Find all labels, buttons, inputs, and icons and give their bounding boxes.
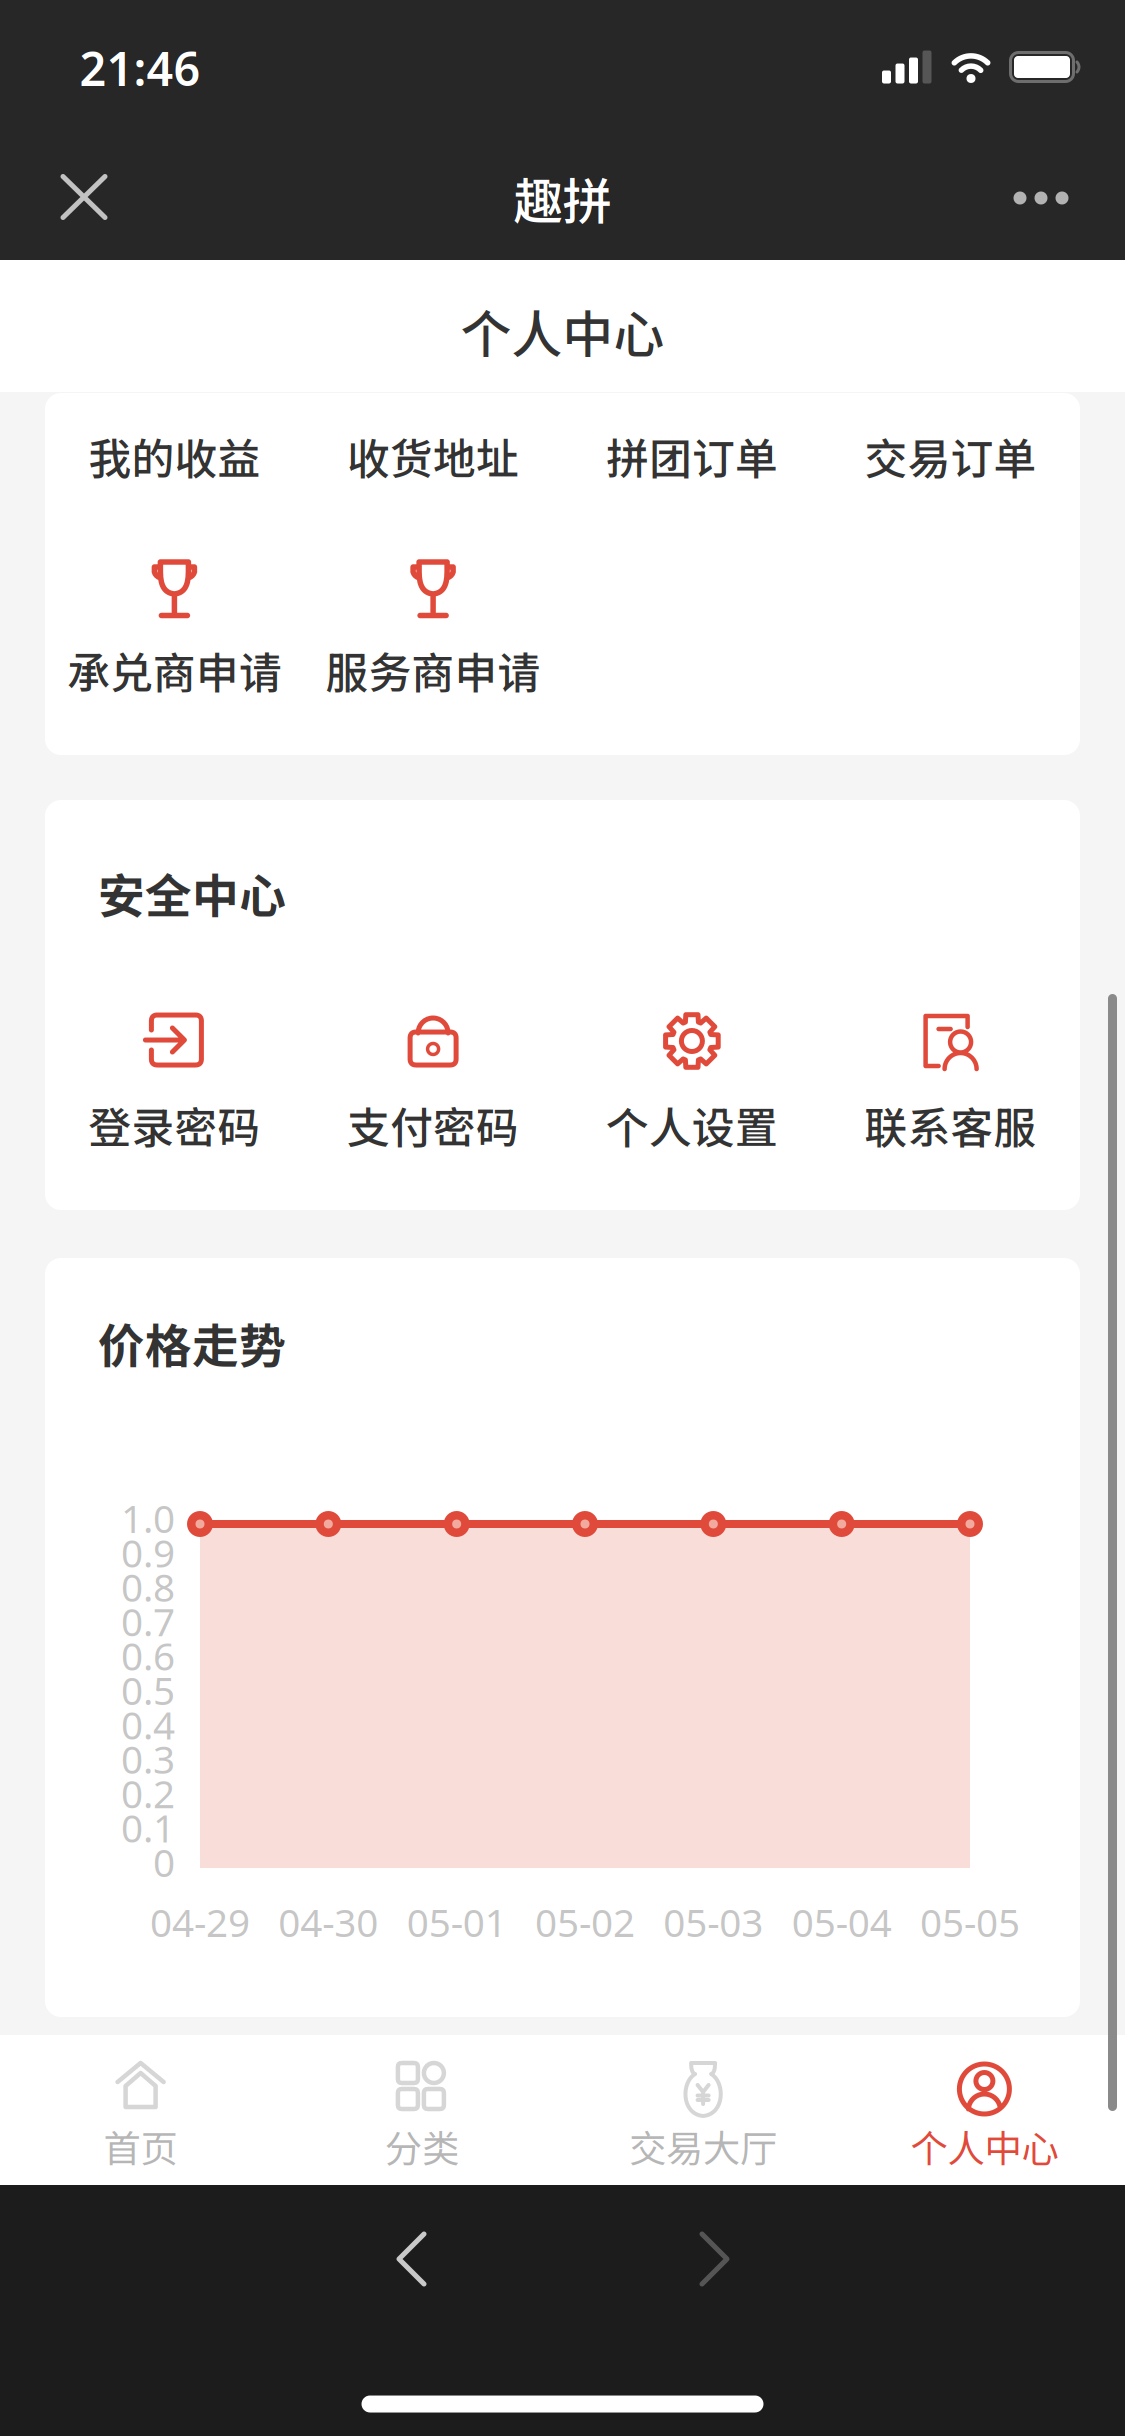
button[interactable]: Forward — [669, 2214, 759, 2304]
staticText: 交易大厅 — [629, 2119, 777, 2173]
button[interactable]: 交易大厅 — [573, 2049, 833, 2179]
button[interactable]: 首页 — [11, 2049, 271, 2179]
staticText: 0 — [153, 1836, 175, 1888]
button[interactable]: 拼团订单 — [567, 401, 817, 511]
button[interactable]: 联系客服 — [831, 993, 1071, 1173]
staticText: 首页 — [104, 2119, 178, 2173]
staticText: 服务商申请 — [326, 639, 541, 701]
staticText: 安全中心 — [98, 859, 286, 927]
staticText: 0.1 — [121, 1802, 175, 1853]
staticText: 05-03 — [663, 1896, 763, 1948]
button[interactable]: 登录密码 — [54, 993, 294, 1173]
staticText: 04-30 — [278, 1896, 378, 1948]
staticText: 个人中心 — [460, 294, 664, 368]
staticText: 0.9 — [121, 1527, 175, 1578]
staticText: 支付密码 — [347, 1094, 519, 1156]
staticText: 登录密码 — [88, 1094, 260, 1156]
staticText: 0.5 — [121, 1664, 175, 1716]
staticText: 0.7 — [121, 1595, 175, 1647]
staticText: 04-29 — [150, 1896, 250, 1948]
button[interactable]: 分类 — [292, 2049, 552, 2179]
staticText: 05-01 — [407, 1896, 507, 1948]
staticText: 收货地址 — [347, 425, 519, 487]
staticText: 拼团订单 — [606, 425, 778, 487]
button[interactable]: 个人中心 — [854, 2049, 1114, 2179]
staticText: 价格走势 — [98, 1309, 286, 1377]
button[interactable]: More — [996, 168, 1086, 228]
staticText: 1.0 — [121, 1492, 175, 1544]
staticText: 我的收益 — [88, 425, 260, 487]
staticText: 个人设置 — [606, 1094, 778, 1156]
button[interactable]: Back — [367, 2214, 457, 2304]
button[interactable]: 个人设置 — [572, 993, 812, 1173]
button[interactable]: Close — [39, 152, 129, 242]
button[interactable]: 支付密码 — [313, 993, 553, 1173]
button[interactable]: 交易订单 — [826, 401, 1076, 511]
staticText: 0.4 — [121, 1699, 175, 1750]
staticText: 05-04 — [792, 1896, 892, 1948]
button[interactable]: 服务商申请 — [313, 544, 553, 714]
staticText: 0.6 — [121, 1630, 175, 1681]
staticText: 个人中心 — [910, 2119, 1058, 2173]
staticText: 05-02 — [535, 1896, 635, 1948]
button[interactable]: 我的收益 — [49, 401, 299, 511]
staticText: 05-05 — [920, 1896, 1020, 1948]
staticText: 联系客服 — [865, 1094, 1037, 1156]
staticText: 分类 — [385, 2119, 459, 2173]
button[interactable]: 收货地址 — [308, 401, 558, 511]
staticText: 0.8 — [121, 1561, 175, 1612]
staticText: 交易订单 — [865, 425, 1037, 487]
staticText: 21:46 — [79, 37, 200, 99]
staticText: 0.3 — [121, 1733, 175, 1784]
button[interactable]: 承兑商申请 — [54, 544, 294, 714]
staticText: 趣拼 — [513, 162, 611, 234]
staticText: 0.2 — [121, 1767, 175, 1819]
staticText: 承兑商申请 — [67, 639, 282, 701]
